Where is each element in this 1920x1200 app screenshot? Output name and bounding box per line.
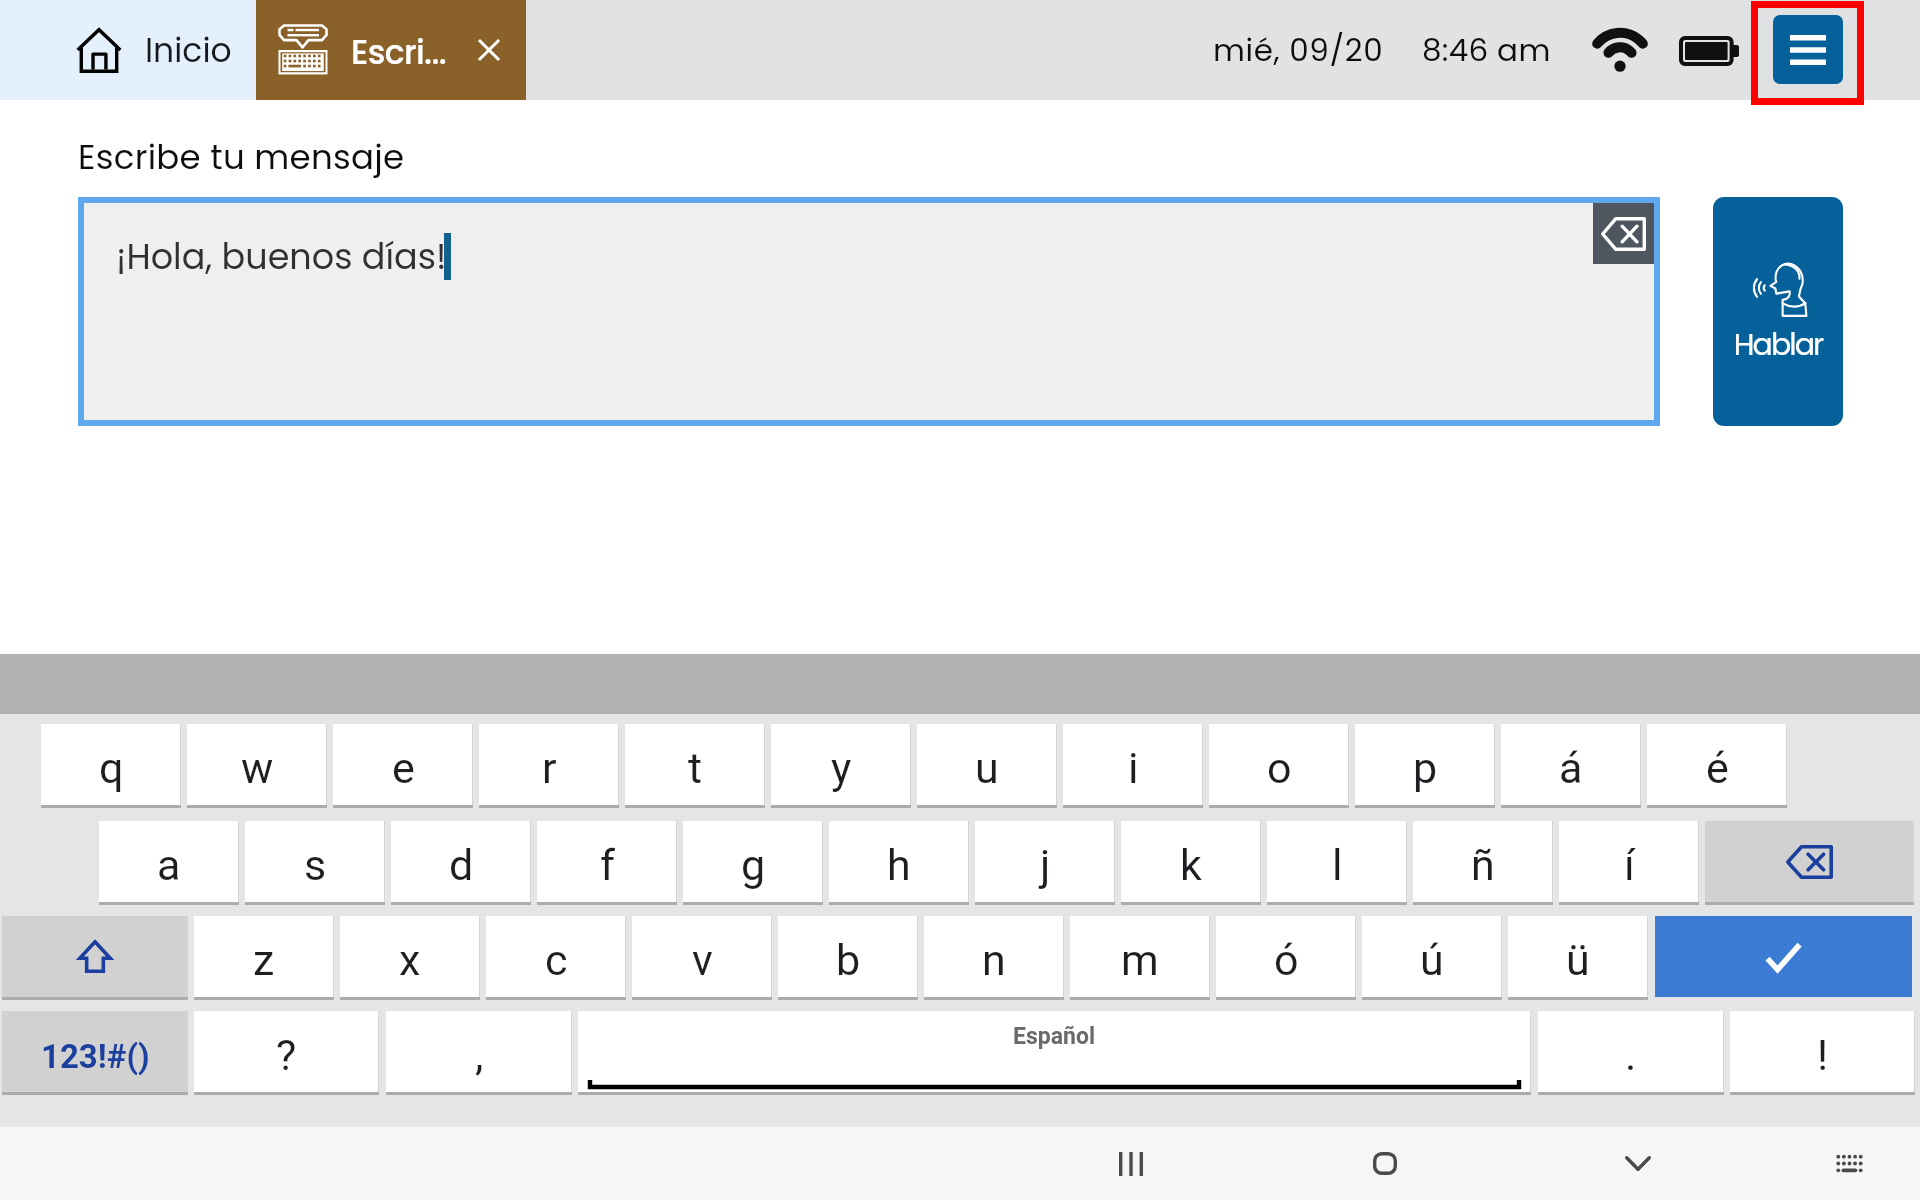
staticText: u [975,743,999,793]
button[interactable]: . [1538,1011,1724,1092]
button[interactable]: i [1063,724,1203,805]
staticText: e [392,743,415,793]
staticText: q [99,743,124,793]
button[interactable]: ¡Hola, buenos días! [84,203,1654,420]
staticText: n [982,935,1006,985]
staticText: b [836,935,861,985]
staticText: á [1559,743,1583,793]
button[interactable]: t [625,724,765,805]
button[interactable]: y [771,724,911,805]
other: Mayúsculas [78,940,112,973]
button[interactable]: v [632,916,772,997]
button[interactable]: Inicio [1346,1127,1424,1200]
button[interactable]: ü [1508,916,1648,997]
staticText: l [1332,840,1343,890]
button[interactable]: é [1647,724,1787,805]
button[interactable]: k [1121,821,1261,902]
button[interactable]: p [1355,724,1495,805]
button[interactable]: b [778,916,918,997]
staticText: g [741,840,766,890]
staticText: s [304,840,327,890]
button[interactable]: g [683,821,823,902]
button[interactable]: e [333,724,473,805]
button[interactable]: o [1209,724,1349,805]
staticText: ú [1420,935,1444,985]
button[interactable]: x [340,916,480,997]
button[interactable]: Recientes [1092,1127,1170,1200]
staticText: í [1624,840,1635,890]
button[interactable]: u [917,724,1057,805]
button[interactable]: a [99,821,239,902]
staticText: o [1267,743,1292,793]
staticText: w [241,743,274,793]
other: Aceptar [1766,943,1801,971]
staticText: Escri... [351,29,447,75]
button[interactable]: d [391,821,531,902]
staticText: p [1413,743,1438,793]
staticText: é [1706,743,1729,793]
button[interactable]: h [829,821,969,902]
button[interactable]: ? [194,1011,379,1092]
other: Espacio [578,1011,1531,1092]
staticText: ñ [1471,840,1495,890]
staticText: f [600,840,615,890]
staticText: m [1121,935,1159,985]
button[interactable]: Mayúsculas [2,916,188,997]
button[interactable]: Hablar [1713,197,1843,426]
button[interactable]: Inicio [0,0,257,100]
button[interactable]: ñ [1413,821,1553,902]
button[interactable]: Ocultar teclado [1599,1127,1677,1200]
button[interactable]: Cambiar teclado [1811,1127,1889,1200]
button[interactable]: ú [1362,916,1502,997]
button[interactable]: j [975,821,1115,902]
staticText: h [887,840,911,890]
staticText: ¡Hola, buenos días! [116,232,447,281]
button[interactable]: Escri... [256,0,526,100]
button[interactable]: m [1070,916,1210,997]
button[interactable]: z [194,916,334,997]
button[interactable]: á [1501,724,1641,805]
staticText: 123!#() [41,1037,150,1076]
button[interactable]: f [537,821,677,902]
button[interactable]: Espacio [578,1011,1531,1092]
staticText: Escribe tu mensaje [78,133,405,181]
staticText: x [399,935,421,985]
staticText: Inicio [145,27,232,73]
button[interactable]: c [486,916,626,997]
other: Retroceso [1786,845,1833,879]
staticText: ó [1274,935,1299,985]
staticText: ! [1817,1030,1829,1080]
button[interactable]: ! [1730,1011,1915,1092]
staticText: j [1040,840,1051,890]
button[interactable]: í [1559,821,1699,902]
staticText: 8:46 am [1422,28,1551,71]
staticText: Hablar [1713,324,1843,366]
staticText: ? [276,1030,297,1080]
staticText: z [253,935,275,985]
button[interactable]: Retroceso [1705,821,1914,902]
staticText: t [688,743,703,793]
staticText: r [542,743,557,793]
staticText: y [831,743,852,793]
button[interactable]: w [187,724,327,805]
staticText: i [1128,743,1139,793]
staticText: c [545,935,568,985]
button[interactable]: q [41,724,181,805]
staticText: Español [1013,1023,1096,1050]
button[interactable]: r [479,724,619,805]
button[interactable]: 123!#() [2,1011,188,1092]
staticText: . [1625,1030,1637,1080]
button[interactable]: ó [1216,916,1356,997]
staticText: ü [1566,935,1590,985]
staticText: mié, 09/20 [1213,28,1384,71]
button[interactable]: Aceptar [1655,916,1912,997]
button[interactable]: , [386,1011,572,1092]
button[interactable]: n [924,916,1064,997]
button[interactable]: s [245,821,385,902]
staticText: , [475,1030,484,1080]
button[interactable]: Borrar texto [1593,203,1654,264]
button[interactable]: Menú [1758,8,1857,98]
button[interactable]: l [1267,821,1407,902]
staticText: d [449,840,474,890]
button[interactable]: Cerrar pestaña [469,30,509,70]
